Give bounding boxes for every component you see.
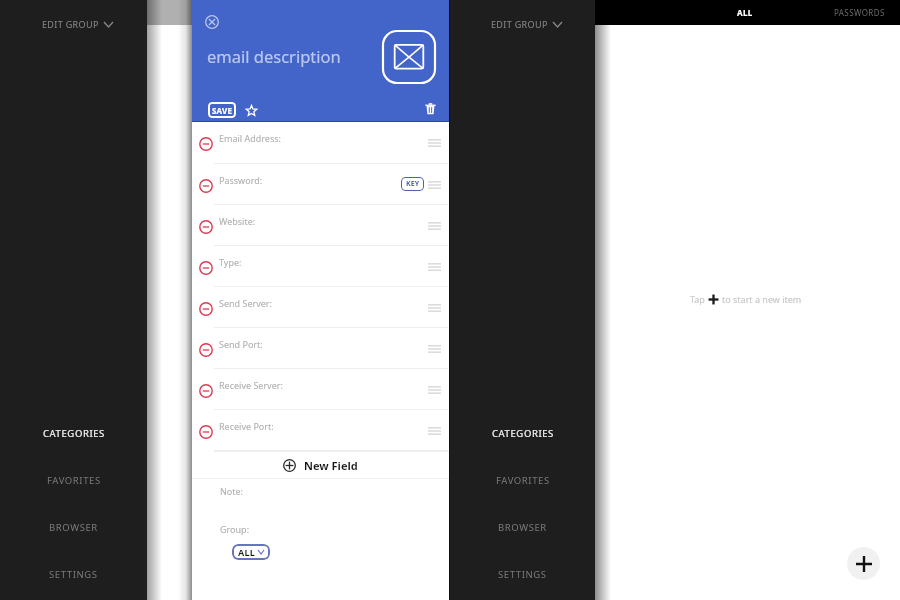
- button[interactable]: SAVE: [208, 102, 236, 118]
- staticText: Type:: [219, 256, 242, 268]
- staticText: ALL: [238, 546, 255, 558]
- staticText: FAVORITES: [47, 474, 101, 487]
- button[interactable]: ALL: [232, 544, 270, 560]
- button[interactable]: EDIT GROUP: [485, 15, 568, 33]
- staticText: ALL: [737, 7, 753, 18]
- button[interactable]: Close: [203, 13, 221, 31]
- button[interactable]: New Field: [192, 451, 449, 479]
- staticText: Send Server:: [219, 297, 272, 309]
- staticText: BROWSER: [498, 521, 547, 534]
- staticText: Email Address:: [219, 132, 281, 144]
- staticText: to start a new item: [722, 293, 802, 305]
- button[interactable]: ALL: [709, 0, 781, 25]
- button[interactable]: Email item icon: [382, 30, 436, 84]
- staticText: KEY: [406, 179, 420, 189]
- button[interactable]: SETTINGS: [0, 551, 147, 598]
- button[interactable]: Receive Server:: [192, 369, 449, 410]
- button[interactable]: Website:: [192, 205, 449, 246]
- button[interactable]: CATEGORIES: [0, 410, 147, 457]
- staticText: Receive Port:: [219, 420, 274, 432]
- staticText: EDIT GROUP: [42, 18, 99, 30]
- staticText: Password:: [219, 174, 263, 186]
- staticText: SAVE: [212, 105, 233, 116]
- button[interactable]: KEY: [401, 177, 424, 191]
- button[interactable]: Type:: [192, 246, 449, 287]
- staticText: Tap: [690, 293, 705, 305]
- button[interactable]: CATEGORIES: [450, 410, 595, 457]
- button[interactable]: FAVORITES: [450, 457, 595, 504]
- staticText: New Field: [304, 458, 358, 473]
- button[interactable]: Send Server:: [192, 287, 449, 328]
- button[interactable]: Favorite: [243, 102, 259, 118]
- button[interactable]: Email Address:: [192, 122, 449, 164]
- staticText: Send Port:: [219, 338, 263, 350]
- staticText: PASSWORDS: [834, 7, 885, 18]
- staticText: SETTINGS: [498, 568, 547, 581]
- staticText: CATEGORIES: [492, 427, 554, 440]
- staticText: BROWSER: [49, 521, 98, 534]
- staticText: CATEGORIES: [43, 427, 105, 440]
- button[interactable]: EDIT GROUP: [36, 15, 119, 33]
- staticText: Group:: [220, 523, 250, 535]
- button[interactable]: Password:: [192, 164, 449, 205]
- staticText: SETTINGS: [49, 568, 98, 581]
- staticText: FAVORITES: [496, 474, 550, 487]
- button[interactable]: BROWSER: [450, 504, 595, 551]
- button[interactable]: BROWSER: [0, 504, 147, 551]
- button[interactable]: PASSWORDS: [811, 0, 900, 25]
- button[interactable]: Receive Port:: [192, 410, 449, 451]
- staticText: EDIT GROUP: [491, 18, 548, 30]
- staticText: Website:: [219, 215, 256, 227]
- staticText: email description: [207, 45, 341, 67]
- button[interactable]: Add new item: [847, 547, 880, 580]
- button[interactable]: Delete: [422, 100, 439, 117]
- staticText: Receive Server:: [219, 379, 283, 391]
- button[interactable]: FAVORITES: [0, 457, 147, 504]
- button[interactable]: Send Port:: [192, 328, 449, 369]
- staticText: Note:: [220, 485, 244, 497]
- button[interactable]: SETTINGS: [450, 551, 595, 598]
